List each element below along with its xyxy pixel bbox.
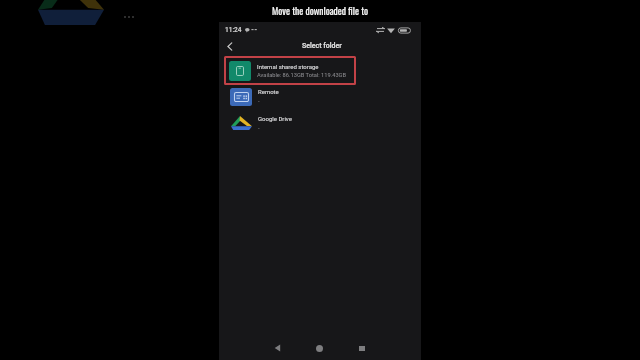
staticText: Move the downloaded file to	[272, 4, 369, 18]
staticText: Select folder	[302, 42, 342, 50]
staticText: -	[258, 98, 260, 105]
staticText: Remote	[258, 88, 279, 95]
button[interactable]: Back	[266, 337, 288, 359]
button[interactable]: Remote	[219, 83, 421, 110]
staticText: Internal shared storage	[257, 63, 319, 70]
button[interactable]: Internal shared storage	[224, 56, 356, 85]
staticText: Google Drive	[258, 115, 292, 122]
staticText: Available: 86.13GB Total: 119.43GB	[257, 72, 347, 79]
staticText: -	[258, 125, 260, 132]
button[interactable]: Google Drive	[219, 110, 421, 137]
button[interactable]: Recent apps	[351, 337, 373, 359]
button[interactable]: Home	[308, 337, 330, 359]
staticText: 11:24	[225, 26, 242, 34]
button[interactable]: Navigate up	[222, 38, 238, 54]
